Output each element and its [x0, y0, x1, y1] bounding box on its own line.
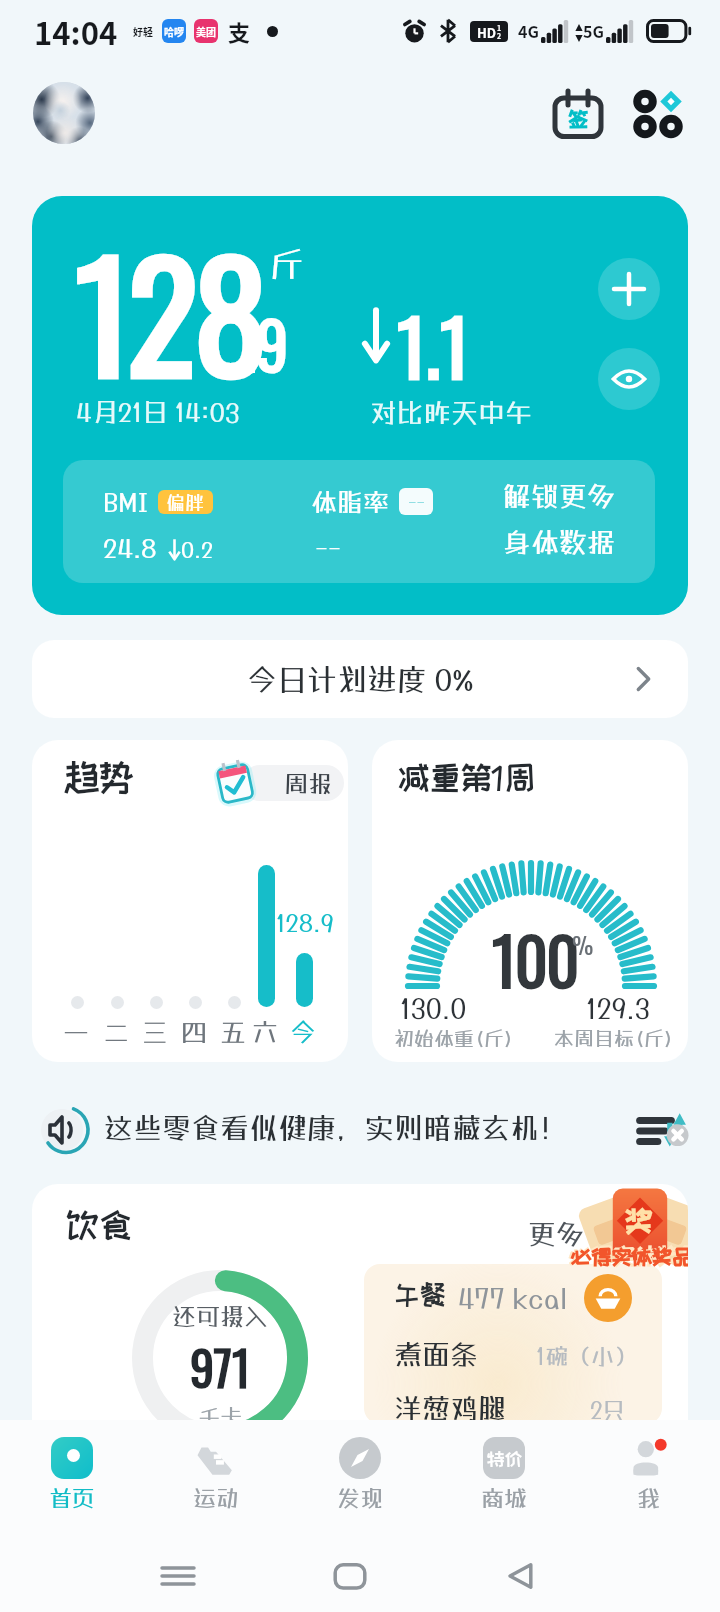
staticText: 0.2	[181, 536, 213, 562]
button[interactable]: 我	[576, 1420, 720, 1530]
staticText: 趋势	[64, 758, 134, 796]
staticText: 哈啰	[164, 24, 184, 38]
staticText: 偏胖	[166, 491, 205, 513]
staticText: 1.1	[397, 288, 469, 401]
staticText: 支	[228, 15, 251, 47]
staticText: 5G	[583, 19, 604, 42]
button[interactable]: More apps	[628, 84, 688, 144]
staticText: 4G	[518, 19, 539, 42]
staticText: 本周目标(斤)	[554, 1026, 674, 1050]
staticText: 1碗（小）	[536, 1342, 638, 1369]
button[interactable]: Prize promotion	[560, 1184, 688, 1276]
staticText: 14:04	[34, 9, 118, 54]
staticText: 128.9	[276, 908, 334, 936]
staticText: 千卡	[198, 1403, 243, 1424]
staticText: 洋葱鸡腿	[394, 1392, 507, 1424]
button[interactable]: 饮食	[32, 1184, 688, 1424]
staticText: 六	[252, 1016, 279, 1047]
staticText: 好轻	[133, 24, 153, 38]
staticText: 今	[290, 1016, 317, 1047]
staticText: 斤	[270, 244, 304, 284]
button[interactable]: Toggle visibility	[598, 348, 660, 410]
staticText: 971	[190, 1331, 251, 1402]
staticText: 128	[75, 200, 264, 419]
staticText: 一	[63, 1016, 90, 1047]
staticText: BMI	[103, 486, 149, 517]
staticText: 还可摄入	[172, 1302, 268, 1330]
button[interactable]: 特价	[432, 1420, 576, 1530]
staticText: 初始体重(斤)	[394, 1026, 514, 1050]
staticText: 三	[142, 1016, 169, 1047]
staticText: 午餐	[394, 1280, 446, 1308]
staticText: 477 kcal	[458, 1282, 568, 1314]
staticText: 必得实体奖品	[569, 1244, 688, 1268]
staticText: 美团	[196, 24, 216, 38]
staticText: 运动	[193, 1484, 239, 1511]
staticText: 饮食	[66, 1206, 133, 1242]
staticText: 特价	[487, 1449, 522, 1468]
staticText: 周报	[284, 769, 332, 797]
staticText: 解锁更多	[503, 480, 616, 513]
button[interactable]: Add record	[598, 258, 660, 320]
staticText: 发现	[337, 1484, 383, 1511]
staticText: 对比昨天中午	[370, 396, 532, 428]
staticText: 129.3	[586, 992, 650, 1024]
button[interactable]: Close tip	[636, 1105, 688, 1157]
button[interactable]: Sign in	[548, 84, 608, 144]
staticText: 我	[637, 1484, 660, 1511]
staticText: .9	[244, 296, 289, 391]
staticText: 今日计划进度 0%	[247, 662, 474, 697]
staticText: 减重第1周	[398, 760, 536, 794]
staticText: 2	[497, 31, 502, 41]
staticText: 煮面条	[394, 1338, 479, 1371]
staticText: 奖	[625, 1206, 653, 1236]
staticText: HD	[477, 23, 497, 42]
button[interactable]: 首页	[0, 1420, 144, 1530]
staticText: 1	[497, 23, 502, 33]
button[interactable]: Add record	[32, 196, 688, 615]
staticText: 100	[492, 912, 578, 1007]
staticText: 五	[220, 1016, 247, 1047]
button[interactable]: 运动	[144, 1420, 288, 1530]
button[interactable]: Profile	[33, 82, 95, 144]
staticText: --	[408, 492, 425, 512]
button[interactable]: 发现	[288, 1420, 432, 1530]
button[interactable]: 减重第1周	[372, 740, 688, 1062]
staticText: 这些零食看似健康，实则暗藏玄机！	[104, 1111, 569, 1145]
staticText: 4月21日 14:03	[76, 396, 240, 427]
staticText: %	[572, 926, 594, 962]
staticText: 2只	[590, 1396, 626, 1423]
staticText: 商城	[481, 1484, 527, 1511]
button[interactable]: 今日计划进度 0%	[32, 640, 688, 718]
staticText: 四	[181, 1016, 208, 1047]
staticText: 体脂率	[311, 486, 390, 517]
staticText: 24.8	[103, 532, 157, 563]
button[interactable]: 趋势	[32, 740, 348, 1062]
staticText: 首页	[49, 1484, 95, 1511]
staticText: 130.0	[400, 992, 467, 1024]
staticText: 二	[103, 1016, 130, 1047]
staticText: 更多	[528, 1218, 585, 1251]
button[interactable]: 周报	[242, 765, 344, 801]
staticText: 必得实体奖品	[571, 1246, 688, 1268]
staticText: 身体数据	[503, 526, 616, 559]
staticText: --	[315, 532, 342, 563]
staticText: 签	[568, 108, 589, 130]
button[interactable]: Play audio	[40, 1105, 90, 1155]
